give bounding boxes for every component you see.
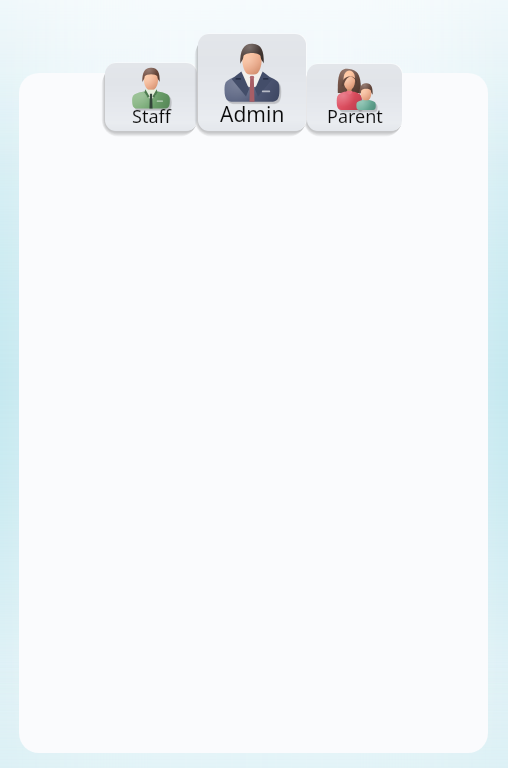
button[interactable]: Parent [307,64,402,131]
staticText: Parent [327,104,383,129]
button[interactable]: Staff [105,63,197,131]
button[interactable]: Admin [198,34,306,131]
staticText: Admin [220,100,285,129]
staticText: Staff [132,104,171,129]
